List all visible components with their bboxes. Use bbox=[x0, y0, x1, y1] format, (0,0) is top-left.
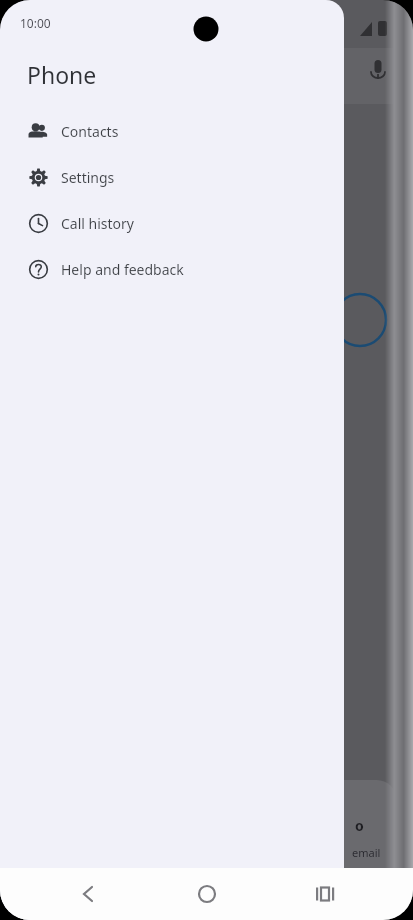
button[interactable]: Recent apps bbox=[295, 868, 355, 920]
button[interactable]: Back bbox=[58, 868, 118, 920]
button[interactable]: Contacts bbox=[0, 108, 344, 154]
staticText: Contacts bbox=[61, 122, 119, 141]
staticText: email bbox=[352, 845, 381, 860]
staticText: Help and feedback bbox=[61, 260, 184, 279]
staticText: Settings bbox=[61, 168, 115, 187]
staticText: Call history bbox=[61, 214, 134, 233]
staticText: Phone bbox=[27, 59, 97, 90]
staticText: o bbox=[355, 816, 364, 835]
button[interactable]: Help and feedback bbox=[0, 246, 344, 292]
button[interactable]: Call history bbox=[0, 200, 344, 246]
staticText: 10:00 bbox=[20, 15, 51, 31]
button[interactable]: Settings bbox=[0, 154, 344, 200]
button[interactable]: Home bbox=[177, 868, 237, 920]
